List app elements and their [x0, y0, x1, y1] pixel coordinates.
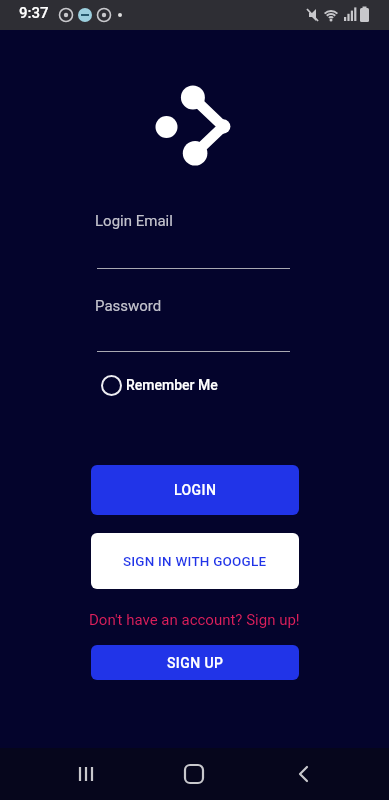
staticText: Don't have an account? Sign up! [89, 611, 300, 629]
staticText: SIGN UP [167, 655, 224, 671]
button[interactable]: SIGN IN WITH GOOGLE [91, 533, 299, 589]
button[interactable]: SIGN UP [91, 645, 299, 680]
staticText: SIGN IN WITH GOOGLE [123, 553, 267, 569]
button[interactable]: Don't have an account? Sign up! [0, 611, 389, 629]
staticText: Login Email [95, 212, 173, 230]
staticText: 9:37 [19, 4, 49, 22]
button[interactable] [283, 754, 323, 794]
button[interactable] [66, 754, 106, 794]
staticText: Remember Me [126, 377, 218, 393]
button[interactable] [100, 374, 220, 398]
button[interactable]: LOGIN [91, 465, 299, 515]
button[interactable] [174, 754, 214, 794]
staticText: LOGIN [174, 482, 217, 498]
staticText: Password [95, 297, 162, 315]
